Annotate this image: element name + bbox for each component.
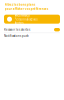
staticText: Notifications push xyxy=(4,34,29,38)
staticText: Mes filtres xyxy=(14,14,29,17)
staticText: Recevoir les alertes xyxy=(4,28,30,31)
staticText: Personnalisez vos alertes xyxy=(14,18,37,25)
staticText: Filtrez les bons plans xyxy=(5,3,35,6)
button[interactable]: Mes filtres xyxy=(4,15,60,24)
staticText: pour afficher vos préférences xyxy=(5,7,48,11)
